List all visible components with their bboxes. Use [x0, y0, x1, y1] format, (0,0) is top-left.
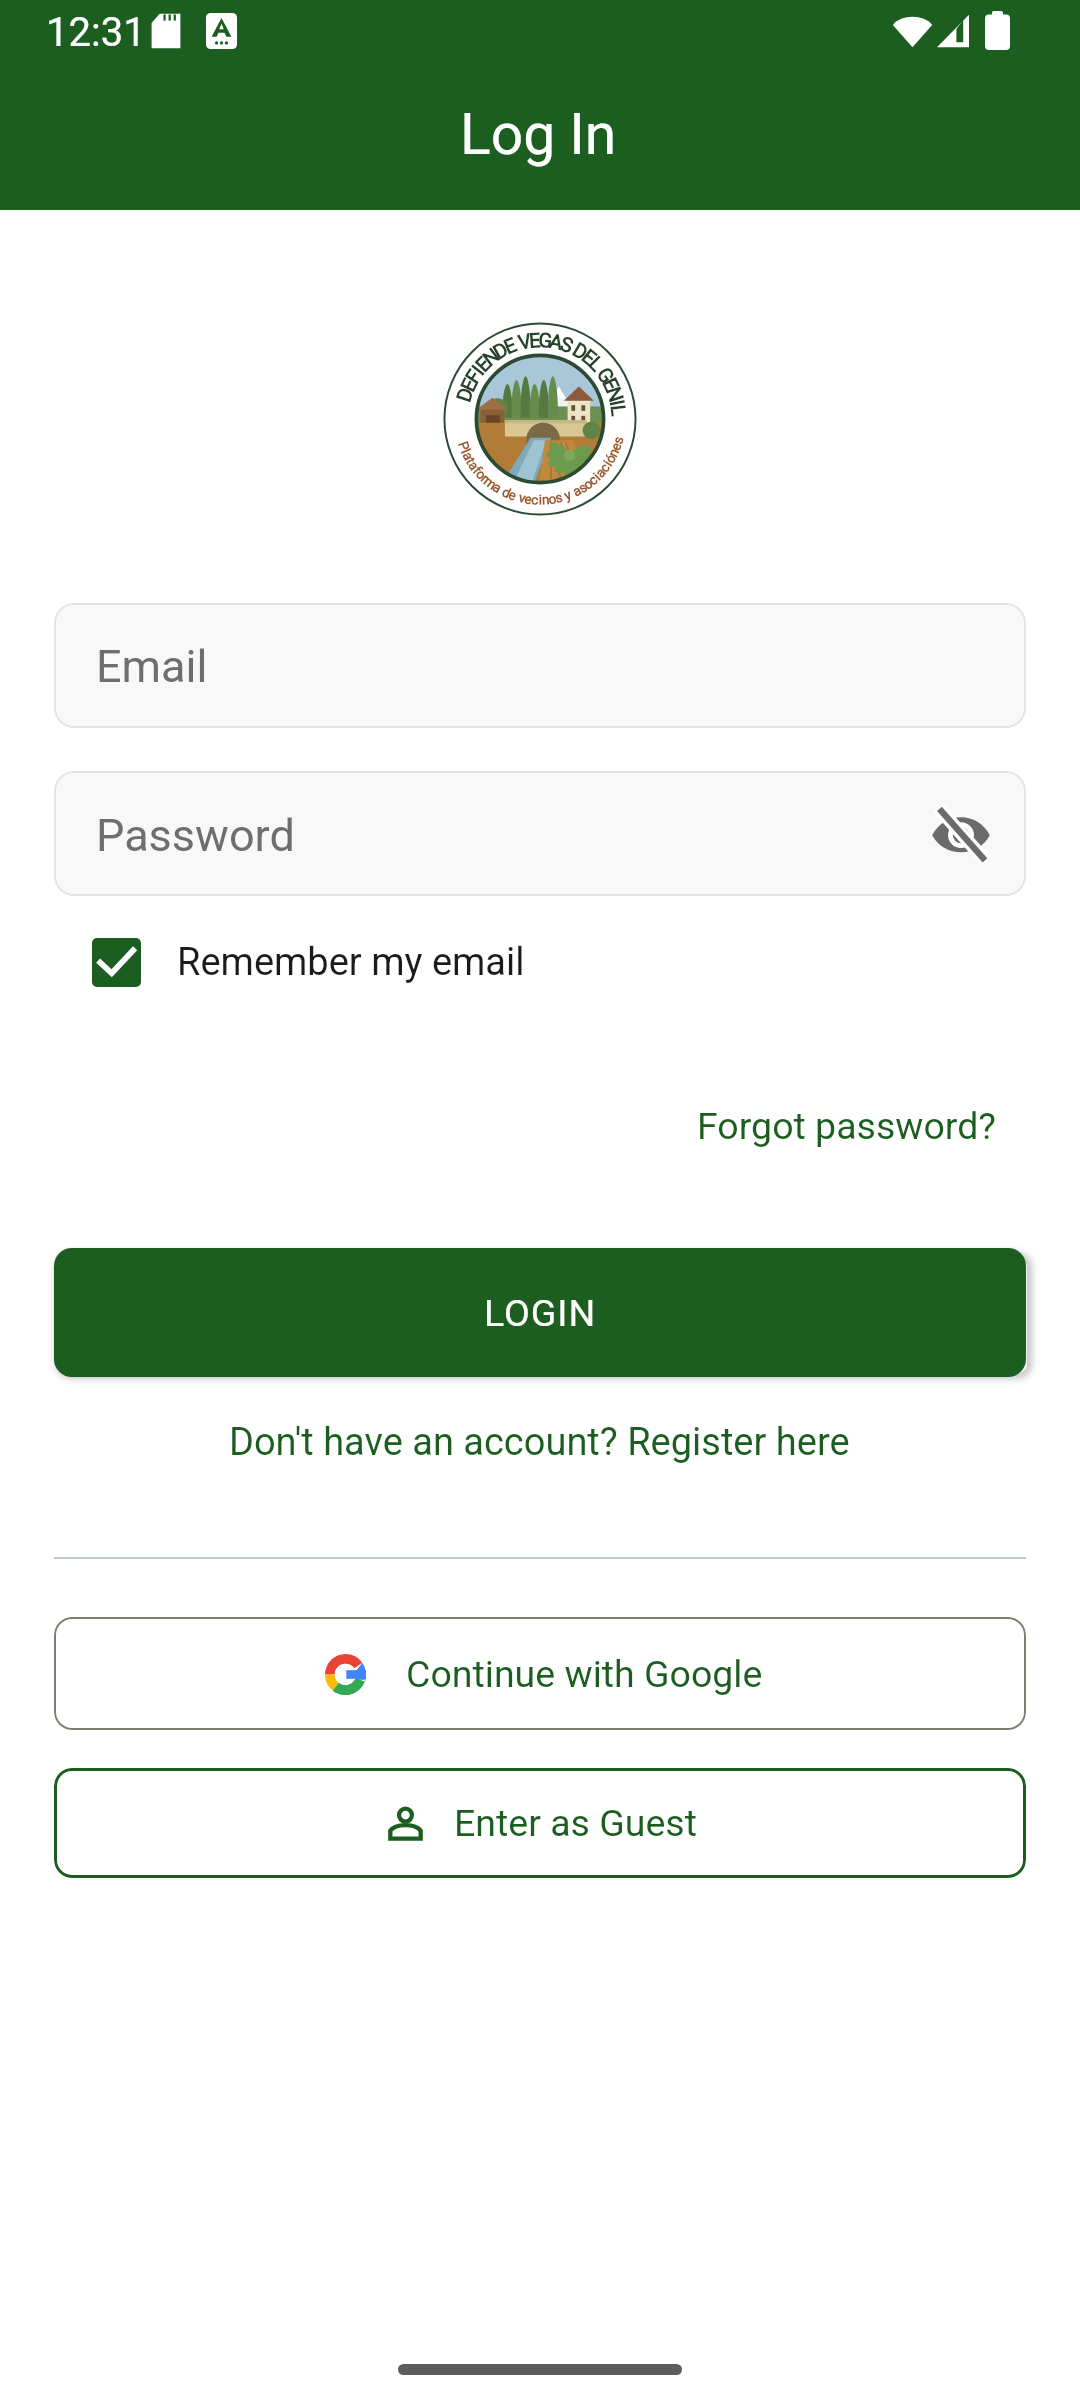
button[interactable]: Continue with Google [54, 1617, 1026, 1730]
button[interactable]: Enter as Guest [54, 1768, 1026, 1878]
button[interactable]: Show password [929, 802, 993, 866]
staticText: Password [96, 809, 295, 862]
button[interactable]: Forgot password? [697, 1104, 997, 1148]
staticText: Email [96, 640, 208, 693]
button[interactable]: Password [54, 771, 1026, 896]
staticText: Remember my email [177, 940, 525, 985]
staticText: Enter as Guest [454, 1801, 697, 1845]
staticText: Log In [460, 101, 617, 168]
staticText: Continue with Google [406, 1652, 763, 1696]
button[interactable]: LOGIN [54, 1248, 1026, 1377]
button[interactable]: Don't have an account? Register here [229, 1420, 850, 1465]
button[interactable]: Email [54, 603, 1026, 728]
staticText: Forgot password? [697, 1104, 997, 1148]
staticText: LOGIN [484, 1291, 597, 1335]
staticText: Don't have an account? Register here [229, 1420, 850, 1465]
button[interactable]: Remember my email [92, 932, 525, 992]
staticText: 12:31 [46, 9, 146, 56]
